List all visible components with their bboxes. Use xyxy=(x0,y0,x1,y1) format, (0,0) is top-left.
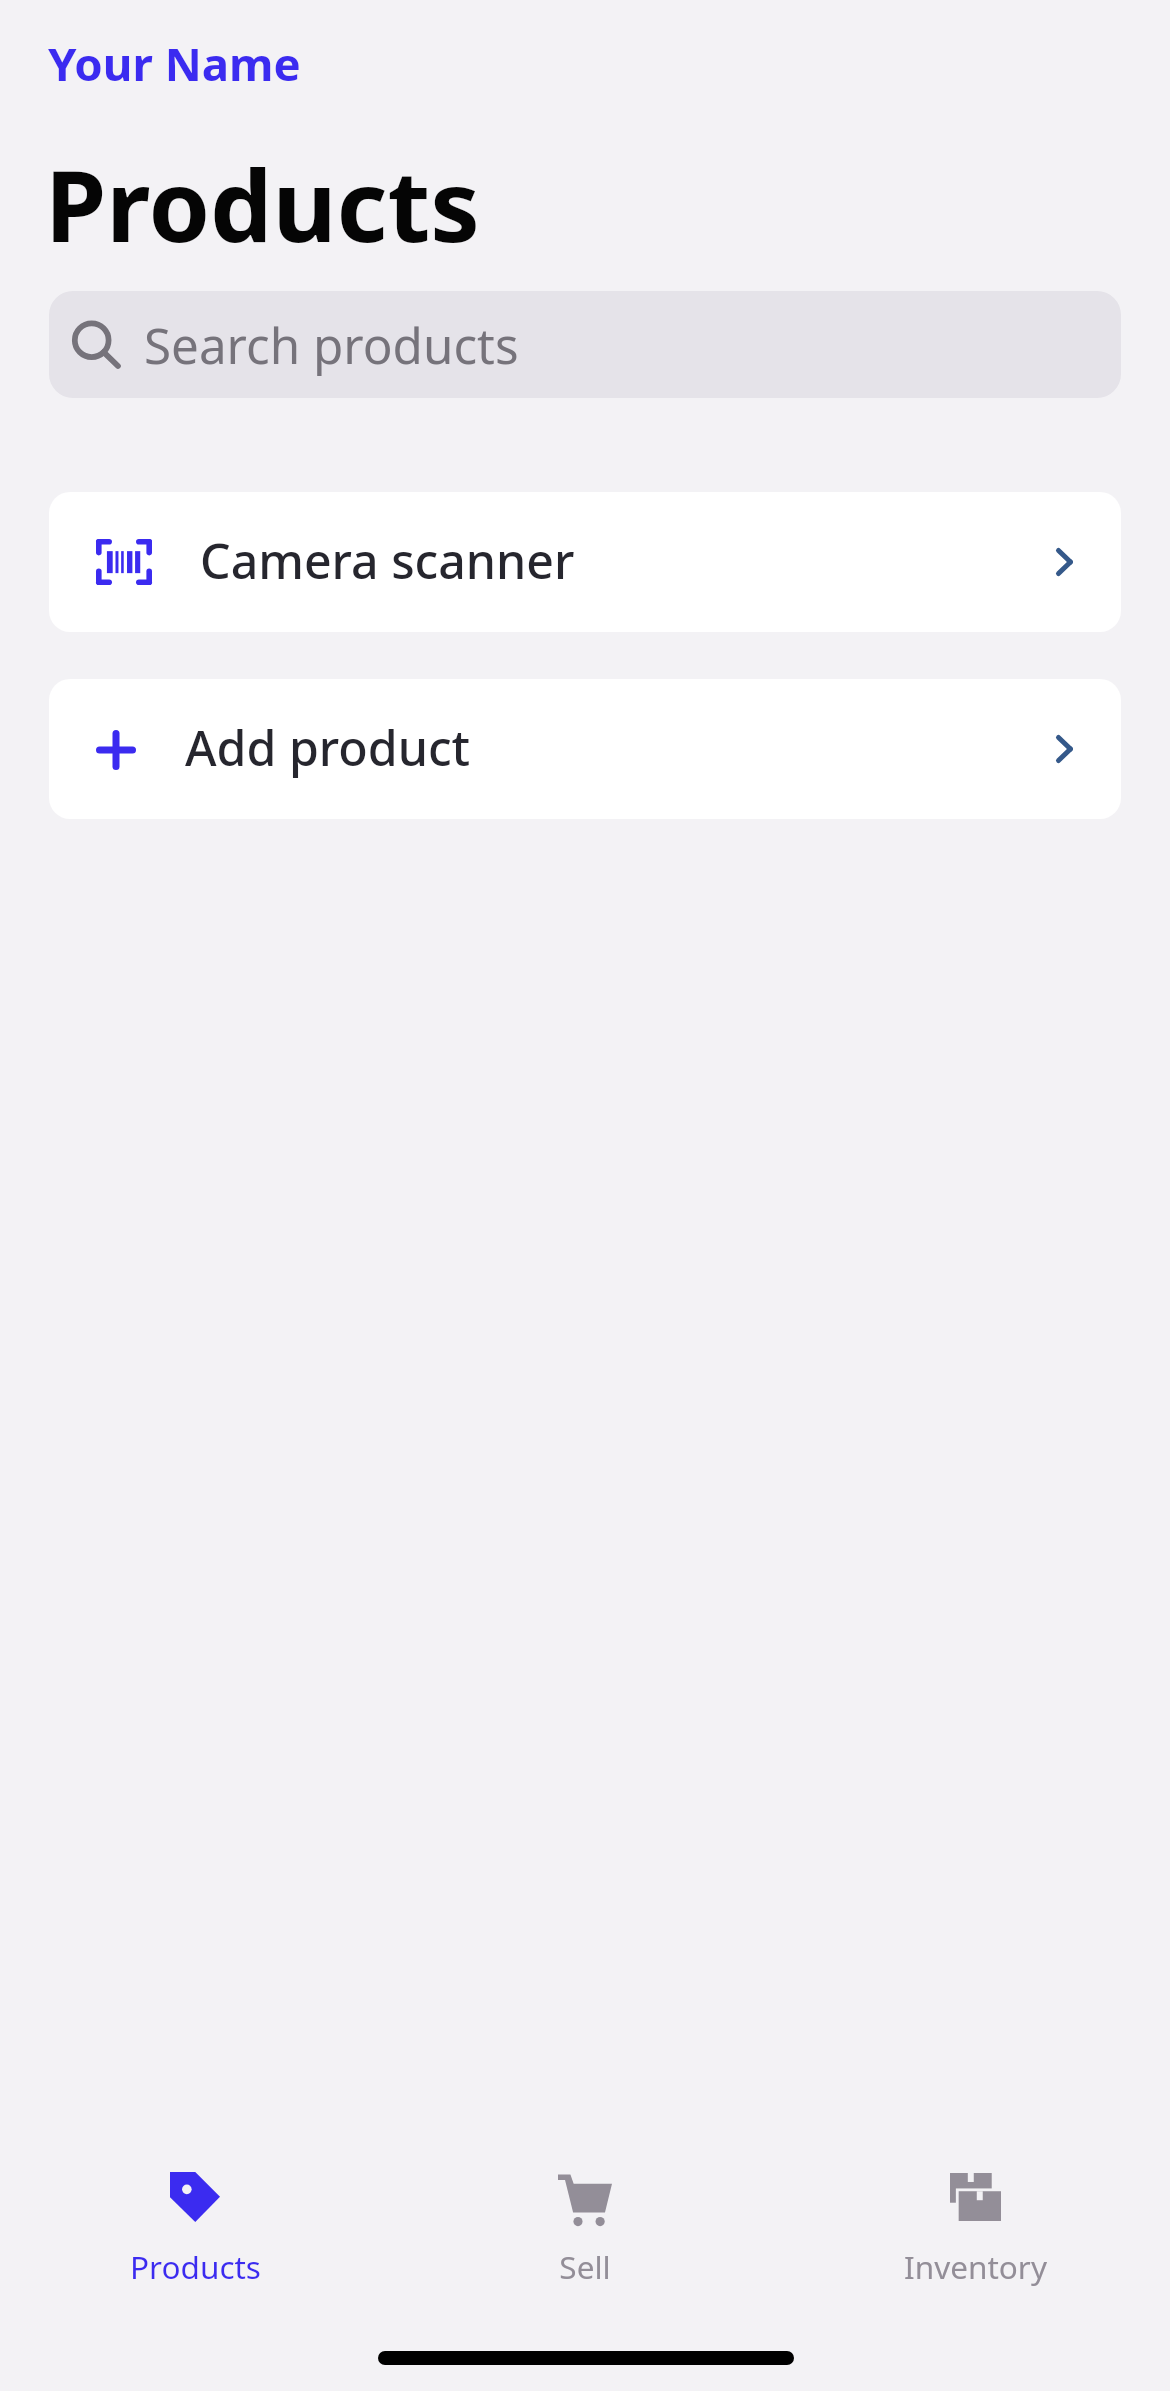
staticText: Sell xyxy=(559,2245,611,2288)
staticText: Camera scanner xyxy=(200,527,575,593)
button[interactable]: Inventory xyxy=(780,2136,1170,2288)
staticText: Your Name xyxy=(48,32,301,94)
button[interactable]: Add product xyxy=(49,679,1121,819)
button[interactable]: Camera scanner xyxy=(49,492,1121,632)
other: Search xyxy=(72,320,121,369)
button[interactable]: Sell xyxy=(390,2136,780,2288)
button[interactable]: Products xyxy=(0,2136,390,2288)
other: Products xyxy=(170,2172,220,2222)
staticText: Search products xyxy=(144,311,519,378)
button[interactable]: Search xyxy=(49,291,1121,398)
staticText: Products xyxy=(130,2245,261,2288)
other: Inventory xyxy=(950,2173,1001,2221)
other: Sell xyxy=(558,2173,612,2222)
staticText: Inventory xyxy=(904,2245,1047,2288)
staticText: Add product xyxy=(185,714,471,780)
staticText: Products xyxy=(45,136,480,270)
